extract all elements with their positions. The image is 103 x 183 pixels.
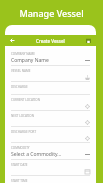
button[interactable]: CURRENT LOCATION — [5, 95, 96, 111]
button[interactable]: COMMODITY — [5, 143, 96, 160]
staticText: DISCHARGE PORT — [11, 130, 37, 134]
staticText: Select a Commodity... — [11, 151, 62, 158]
button[interactable]: START DATE — [5, 160, 96, 176]
staticText: Manage Vessel — [19, 7, 84, 19]
button[interactable]: Back — [5, 35, 20, 46]
button[interactable]: NEXT LOCATION — [5, 111, 96, 127]
staticText: NEXT LOCATION — [11, 114, 34, 118]
button[interactable]: Save — [81, 35, 96, 46]
staticText: START DATE — [11, 163, 28, 167]
staticText: DISCHARGE — [11, 85, 28, 89]
staticText: Company Name — [11, 57, 49, 64]
staticText: COMMODITY — [11, 146, 30, 150]
button[interactable]: DISCHARGE — [5, 82, 96, 95]
button[interactable]: VESSEL NAME — [5, 66, 96, 82]
staticText: Create Vessel — [36, 38, 65, 44]
button[interactable]: DISCHARGE PORT — [5, 127, 96, 143]
button[interactable]: COMPANY NAME — [5, 49, 96, 66]
staticText: START TIME — [11, 179, 28, 183]
button[interactable]: START TIME — [5, 176, 96, 183]
staticText: COMPANY NAME — [11, 52, 35, 56]
staticText: CURRENT LOCATION — [11, 98, 40, 102]
staticText: VESSEL NAME — [11, 69, 31, 73]
